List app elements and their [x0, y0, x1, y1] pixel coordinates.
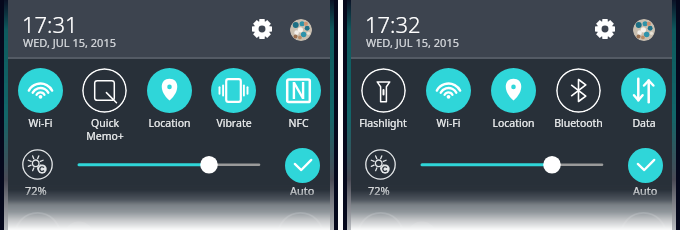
staticText: 17:31: [22, 9, 78, 39]
button[interactable]: Wi-Fi: [8, 63, 72, 141]
button[interactable]: [628, 148, 663, 183]
staticText: 72%: [25, 183, 47, 198]
button[interactable]: Data: [611, 63, 675, 141]
button[interactable]: Settings: [252, 19, 272, 39]
staticText: WED, JUL 15, 2015: [23, 35, 116, 50]
button[interactable]: [285, 148, 320, 183]
staticText: WED, JUL 15, 2015: [366, 35, 459, 50]
staticText: Auto: [290, 183, 315, 198]
staticText: Quick Memo+: [86, 116, 124, 141]
staticText: Wi-Fi: [436, 116, 461, 130]
button[interactable]: Profile: [633, 19, 655, 41]
staticText: 17:32: [365, 9, 421, 39]
button[interactable]: Vibrate: [201, 63, 265, 141]
button[interactable]: Location: [481, 63, 545, 141]
staticText: 72%: [368, 183, 390, 198]
button[interactable]: Brightness: [365, 149, 396, 180]
staticText: Vibrate: [216, 116, 252, 130]
staticText: NFC: [288, 116, 309, 130]
staticText: Auto: [633, 183, 658, 198]
button[interactable]: Settings: [595, 19, 615, 39]
button[interactable]: Profile: [290, 19, 312, 41]
staticText: Location: [148, 116, 191, 130]
staticText: Flashlight: [359, 116, 407, 130]
button[interactable]: Bluetooth: [546, 63, 610, 141]
button[interactable]: Location: [137, 63, 201, 141]
button[interactable]: Brightness: [22, 149, 53, 180]
button[interactable]: Wi-Fi: [416, 63, 480, 141]
button[interactable]: Flashlight: [351, 63, 415, 141]
button[interactable]: NFC: [266, 63, 330, 141]
staticText: Location: [492, 116, 535, 130]
button[interactable]: Quick Memo+: [72, 63, 136, 141]
staticText: Data: [632, 116, 656, 130]
staticText: Wi-Fi: [28, 116, 53, 130]
staticText: Bluetooth: [554, 116, 603, 130]
